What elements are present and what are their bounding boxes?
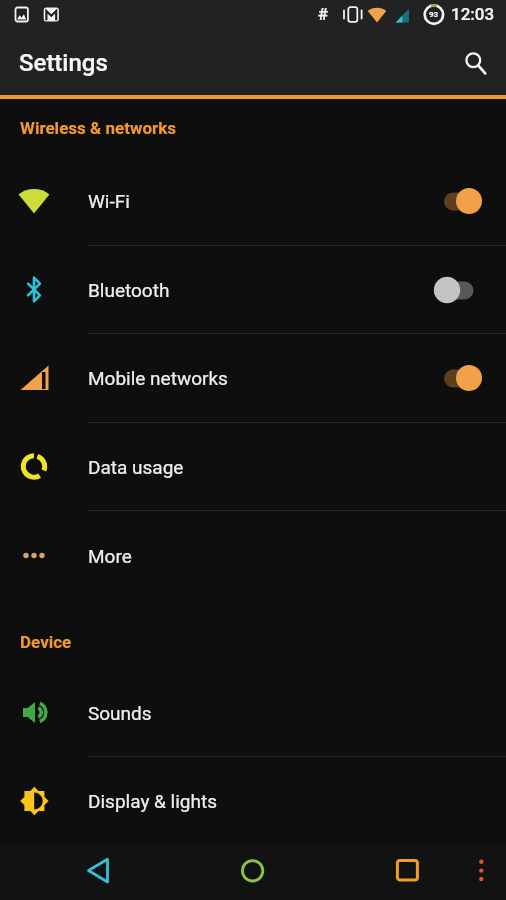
staticText: Data usage bbox=[88, 456, 184, 478]
button[interactable]: Data usage bbox=[0, 423, 506, 510]
staticText: Display & lights bbox=[88, 790, 218, 812]
button[interactable] bbox=[78, 852, 118, 892]
button[interactable] bbox=[233, 852, 273, 892]
staticText: 12:03 bbox=[451, 4, 495, 24]
button[interactable]: Bluetooth bbox=[0, 246, 506, 333]
staticText: Mobile networks bbox=[88, 367, 228, 389]
staticText: More bbox=[88, 545, 132, 567]
staticText: 93 bbox=[429, 10, 439, 19]
button[interactable]: More bbox=[0, 511, 506, 600]
staticText: Settings bbox=[19, 49, 108, 77]
staticText: Device bbox=[20, 632, 72, 652]
button[interactable]: Wi-Fi bbox=[0, 157, 506, 245]
button[interactable] bbox=[460, 47, 492, 79]
staticText: Wi-Fi bbox=[88, 190, 130, 212]
button[interactable] bbox=[467, 852, 497, 882]
button[interactable]: Sounds bbox=[0, 669, 506, 756]
staticText: Wireless & networks bbox=[20, 118, 177, 138]
staticText: Bluetooth bbox=[88, 279, 170, 301]
button[interactable]: Display & lights bbox=[0, 757, 506, 845]
button[interactable]: Mobile networks bbox=[0, 334, 506, 422]
staticText: Sounds bbox=[88, 702, 152, 724]
staticText: # bbox=[318, 4, 329, 24]
button[interactable] bbox=[387, 852, 427, 892]
